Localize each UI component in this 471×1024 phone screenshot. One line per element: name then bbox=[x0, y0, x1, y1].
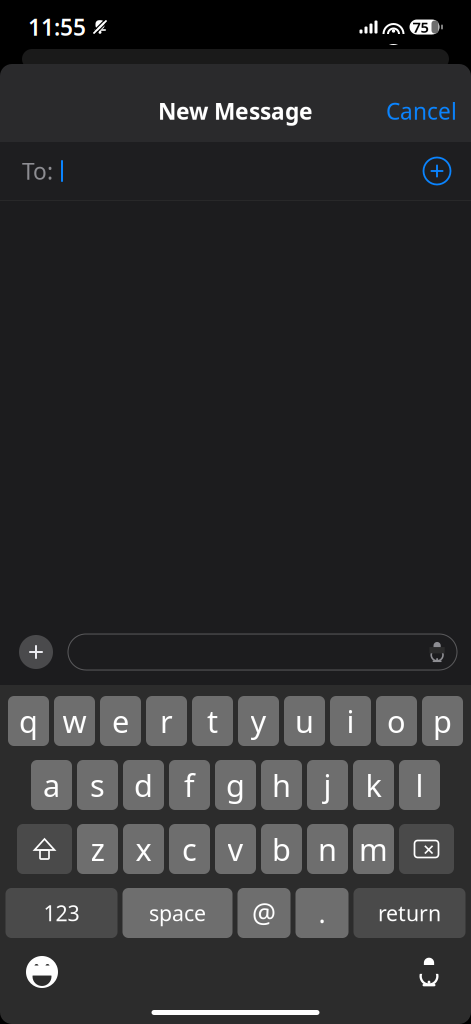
button[interactable]: h bbox=[261, 760, 302, 810]
button[interactable]: Add attachment bbox=[16, 632, 56, 672]
button[interactable]: z bbox=[77, 824, 118, 874]
button[interactable]: w bbox=[54, 696, 95, 746]
button[interactable]: r bbox=[146, 696, 187, 746]
staticText: h bbox=[272, 765, 291, 805]
button[interactable]: m bbox=[353, 824, 394, 874]
staticText: b bbox=[272, 829, 291, 869]
button[interactable]: . bbox=[295, 888, 348, 938]
staticText: . bbox=[318, 895, 325, 931]
button[interactable]: u bbox=[284, 696, 325, 746]
staticText: 75 bbox=[412, 17, 428, 37]
staticText: n bbox=[318, 829, 337, 869]
button[interactable]: y bbox=[238, 696, 279, 746]
button[interactable]: k bbox=[353, 760, 394, 810]
staticText: space bbox=[149, 899, 206, 927]
staticText: Cancel bbox=[386, 96, 457, 126]
button[interactable]: i bbox=[330, 696, 371, 746]
button[interactable]: @ bbox=[237, 888, 290, 938]
staticText: return bbox=[378, 899, 441, 927]
button[interactable]: c bbox=[169, 824, 210, 874]
staticText: p bbox=[433, 701, 452, 741]
staticText: @ bbox=[252, 895, 276, 931]
staticText: To: bbox=[22, 156, 53, 186]
staticText: c bbox=[182, 829, 197, 869]
button[interactable]: j bbox=[307, 760, 348, 810]
button[interactable]: Add contact bbox=[417, 151, 457, 191]
button[interactable]: d bbox=[123, 760, 164, 810]
button[interactable]: Dictation bbox=[405, 950, 453, 994]
button[interactable]: e bbox=[100, 696, 141, 746]
button[interactable]: p bbox=[422, 696, 463, 746]
staticText: z bbox=[90, 829, 104, 869]
button[interactable]: q bbox=[8, 696, 49, 746]
staticText: e bbox=[112, 701, 129, 741]
staticText: l bbox=[415, 765, 423, 805]
button[interactable]: t bbox=[192, 696, 233, 746]
staticText: u bbox=[295, 701, 314, 741]
button[interactable]: f bbox=[169, 760, 210, 810]
button[interactable]: a bbox=[31, 760, 72, 810]
button[interactable]: Delete bbox=[399, 824, 454, 874]
button[interactable]: Emoji keyboard bbox=[18, 950, 66, 994]
button[interactable]: o bbox=[376, 696, 417, 746]
button[interactable]: s bbox=[77, 760, 118, 810]
staticText: d bbox=[134, 765, 153, 805]
button[interactable]: Cancel bbox=[372, 86, 471, 136]
staticText: r bbox=[160, 701, 173, 741]
button[interactable]: v bbox=[215, 824, 256, 874]
staticText: f bbox=[184, 765, 195, 805]
staticText: New Message bbox=[158, 96, 313, 126]
staticText: 11:55 bbox=[28, 12, 86, 42]
staticText: o bbox=[387, 701, 406, 741]
staticText: y bbox=[250, 701, 266, 741]
staticText: 123 bbox=[43, 899, 79, 927]
staticText: v bbox=[227, 829, 243, 869]
button[interactable]: g bbox=[215, 760, 256, 810]
staticText: w bbox=[62, 701, 86, 741]
staticText: g bbox=[226, 765, 245, 805]
button[interactable]: iMessage text field bbox=[68, 634, 457, 670]
button[interactable]: 123 bbox=[5, 888, 117, 938]
button[interactable]: return bbox=[353, 888, 465, 938]
staticText: × bbox=[423, 836, 434, 862]
staticText: t bbox=[207, 701, 218, 741]
button[interactable]: l bbox=[399, 760, 440, 810]
staticText: x bbox=[135, 829, 151, 869]
staticText: m bbox=[359, 829, 388, 869]
staticText: a bbox=[43, 765, 60, 805]
staticText: s bbox=[90, 765, 105, 805]
staticText: q bbox=[19, 701, 38, 741]
button[interactable]: x bbox=[123, 824, 164, 874]
button[interactable]: n bbox=[307, 824, 348, 874]
staticText: i bbox=[346, 701, 354, 741]
staticText: j bbox=[323, 765, 331, 805]
button[interactable]: Shift bbox=[17, 824, 72, 874]
button[interactable]: b bbox=[261, 824, 302, 874]
button[interactable]: space bbox=[122, 888, 232, 938]
staticText: k bbox=[365, 765, 381, 805]
